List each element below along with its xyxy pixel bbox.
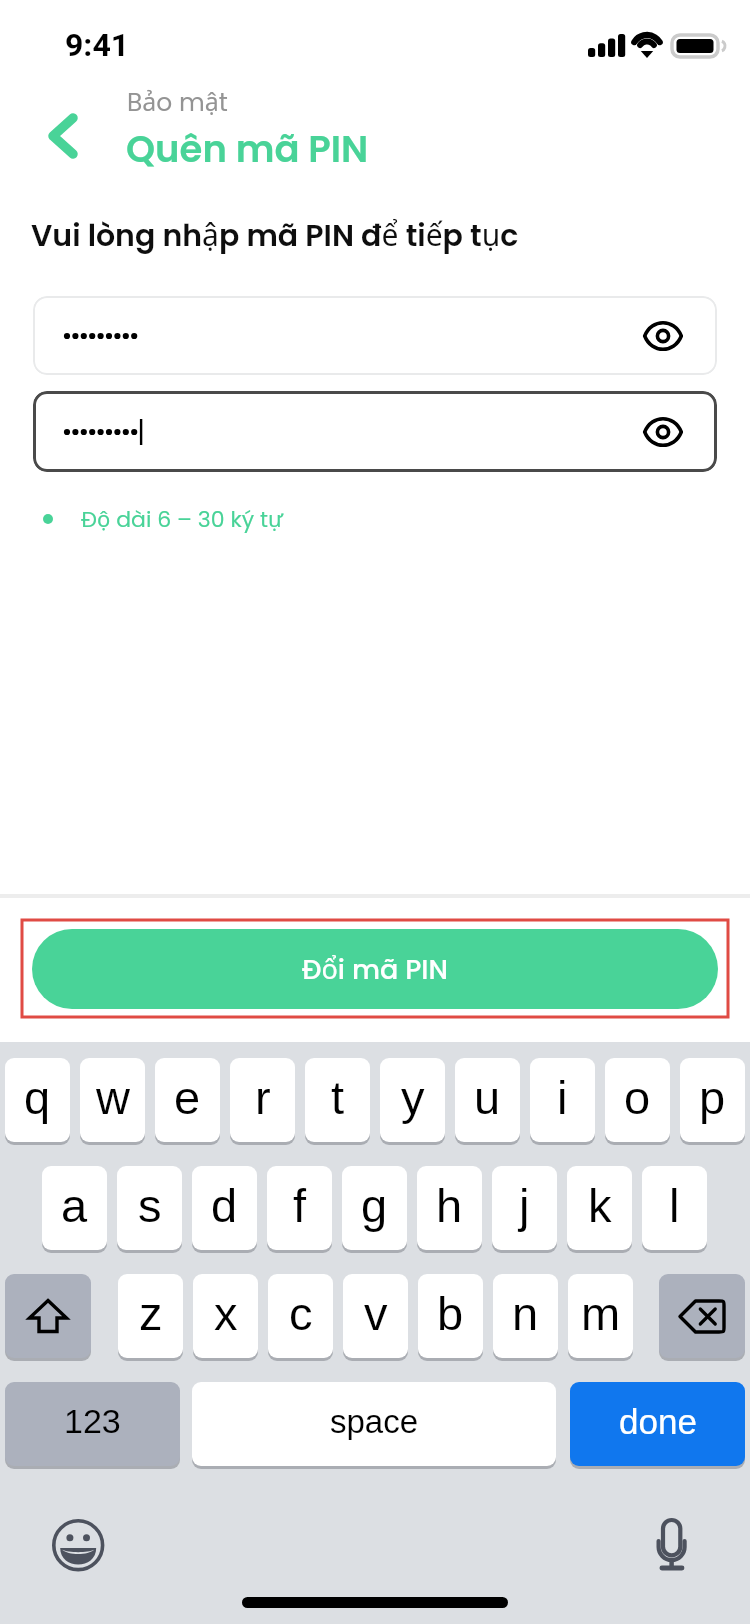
button[interactable]: done [570, 1382, 745, 1466]
button[interactable]: Back [28, 100, 98, 170]
button[interactable]: w [80, 1058, 145, 1142]
staticText: j [519, 1179, 530, 1232]
staticText: a [61, 1179, 88, 1232]
staticText: k [588, 1179, 612, 1232]
staticText: b [437, 1287, 464, 1340]
staticText: v [364, 1287, 388, 1340]
staticText: z [139, 1287, 163, 1340]
staticText: y [401, 1071, 425, 1124]
staticText: r [255, 1071, 271, 1124]
button[interactable]: k [567, 1166, 632, 1250]
button[interactable]: y [380, 1058, 445, 1142]
button[interactable]: s [117, 1166, 182, 1250]
button[interactable]: h [417, 1166, 482, 1250]
button[interactable]: o [605, 1058, 670, 1142]
staticText: o [624, 1071, 651, 1124]
button[interactable]: Show PIN [635, 404, 691, 460]
staticText: m [581, 1287, 621, 1340]
button[interactable]: x [193, 1274, 258, 1358]
staticText: Vui lòng nhập mã PIN để tiếp tục [31, 214, 519, 257]
button[interactable]: Show PIN [33, 391, 717, 472]
staticText: Đổi mã PIN [302, 950, 448, 988]
button[interactable]: i [530, 1058, 595, 1142]
staticText: 123 [64, 1402, 121, 1440]
button[interactable]: z [118, 1274, 183, 1358]
staticText: 9:41 [65, 26, 130, 64]
button[interactable]: l [642, 1166, 707, 1250]
button[interactable]: u [455, 1058, 520, 1142]
button[interactable]: e [155, 1058, 220, 1142]
button[interactable]: r [230, 1058, 295, 1142]
button[interactable]: a [42, 1166, 107, 1250]
staticText: u [474, 1071, 501, 1124]
button[interactable]: p [680, 1058, 745, 1142]
staticText: p [699, 1071, 726, 1124]
staticText: q [24, 1071, 51, 1124]
staticText: s [138, 1179, 162, 1232]
staticText: i [557, 1071, 568, 1124]
staticText: Quên mã PIN [126, 123, 369, 175]
button[interactable]: t [305, 1058, 370, 1142]
button[interactable]: space [192, 1382, 556, 1466]
staticText: w [96, 1071, 130, 1124]
button[interactable]: Backspace [659, 1274, 745, 1358]
button[interactable]: Show PIN [33, 296, 717, 375]
staticText: h [436, 1179, 463, 1232]
staticText: x [214, 1287, 238, 1340]
button[interactable]: j [492, 1166, 557, 1250]
staticText: d [211, 1179, 238, 1232]
staticText: n [512, 1287, 539, 1340]
staticText: done [619, 1402, 697, 1441]
button[interactable]: d [192, 1166, 257, 1250]
staticText: f [293, 1179, 307, 1232]
button[interactable]: Emoji [48, 1515, 108, 1575]
button[interactable]: v [343, 1274, 408, 1358]
button[interactable]: 123 [5, 1382, 180, 1466]
button[interactable]: f [267, 1166, 332, 1250]
button[interactable]: n [493, 1274, 558, 1358]
button[interactable]: b [418, 1274, 483, 1358]
staticText: g [361, 1179, 388, 1232]
staticText: l [669, 1179, 680, 1232]
staticText: c [289, 1287, 313, 1340]
button[interactable]: Shift [5, 1274, 91, 1358]
button[interactable]: Voice input [650, 1516, 694, 1576]
button[interactable]: c [268, 1274, 333, 1358]
button[interactable]: Đổi mã PIN [32, 929, 718, 1009]
staticText: Bảo mật [127, 84, 228, 119]
staticText: Độ dài 6 – 30 ký tự [81, 503, 283, 534]
button[interactable]: q [5, 1058, 70, 1142]
button[interactable]: m [568, 1274, 633, 1358]
staticText: t [331, 1071, 345, 1124]
staticText: e [174, 1071, 201, 1124]
button[interactable]: g [342, 1166, 407, 1250]
button[interactable]: Show PIN [635, 308, 691, 364]
staticText: space [330, 1403, 419, 1440]
